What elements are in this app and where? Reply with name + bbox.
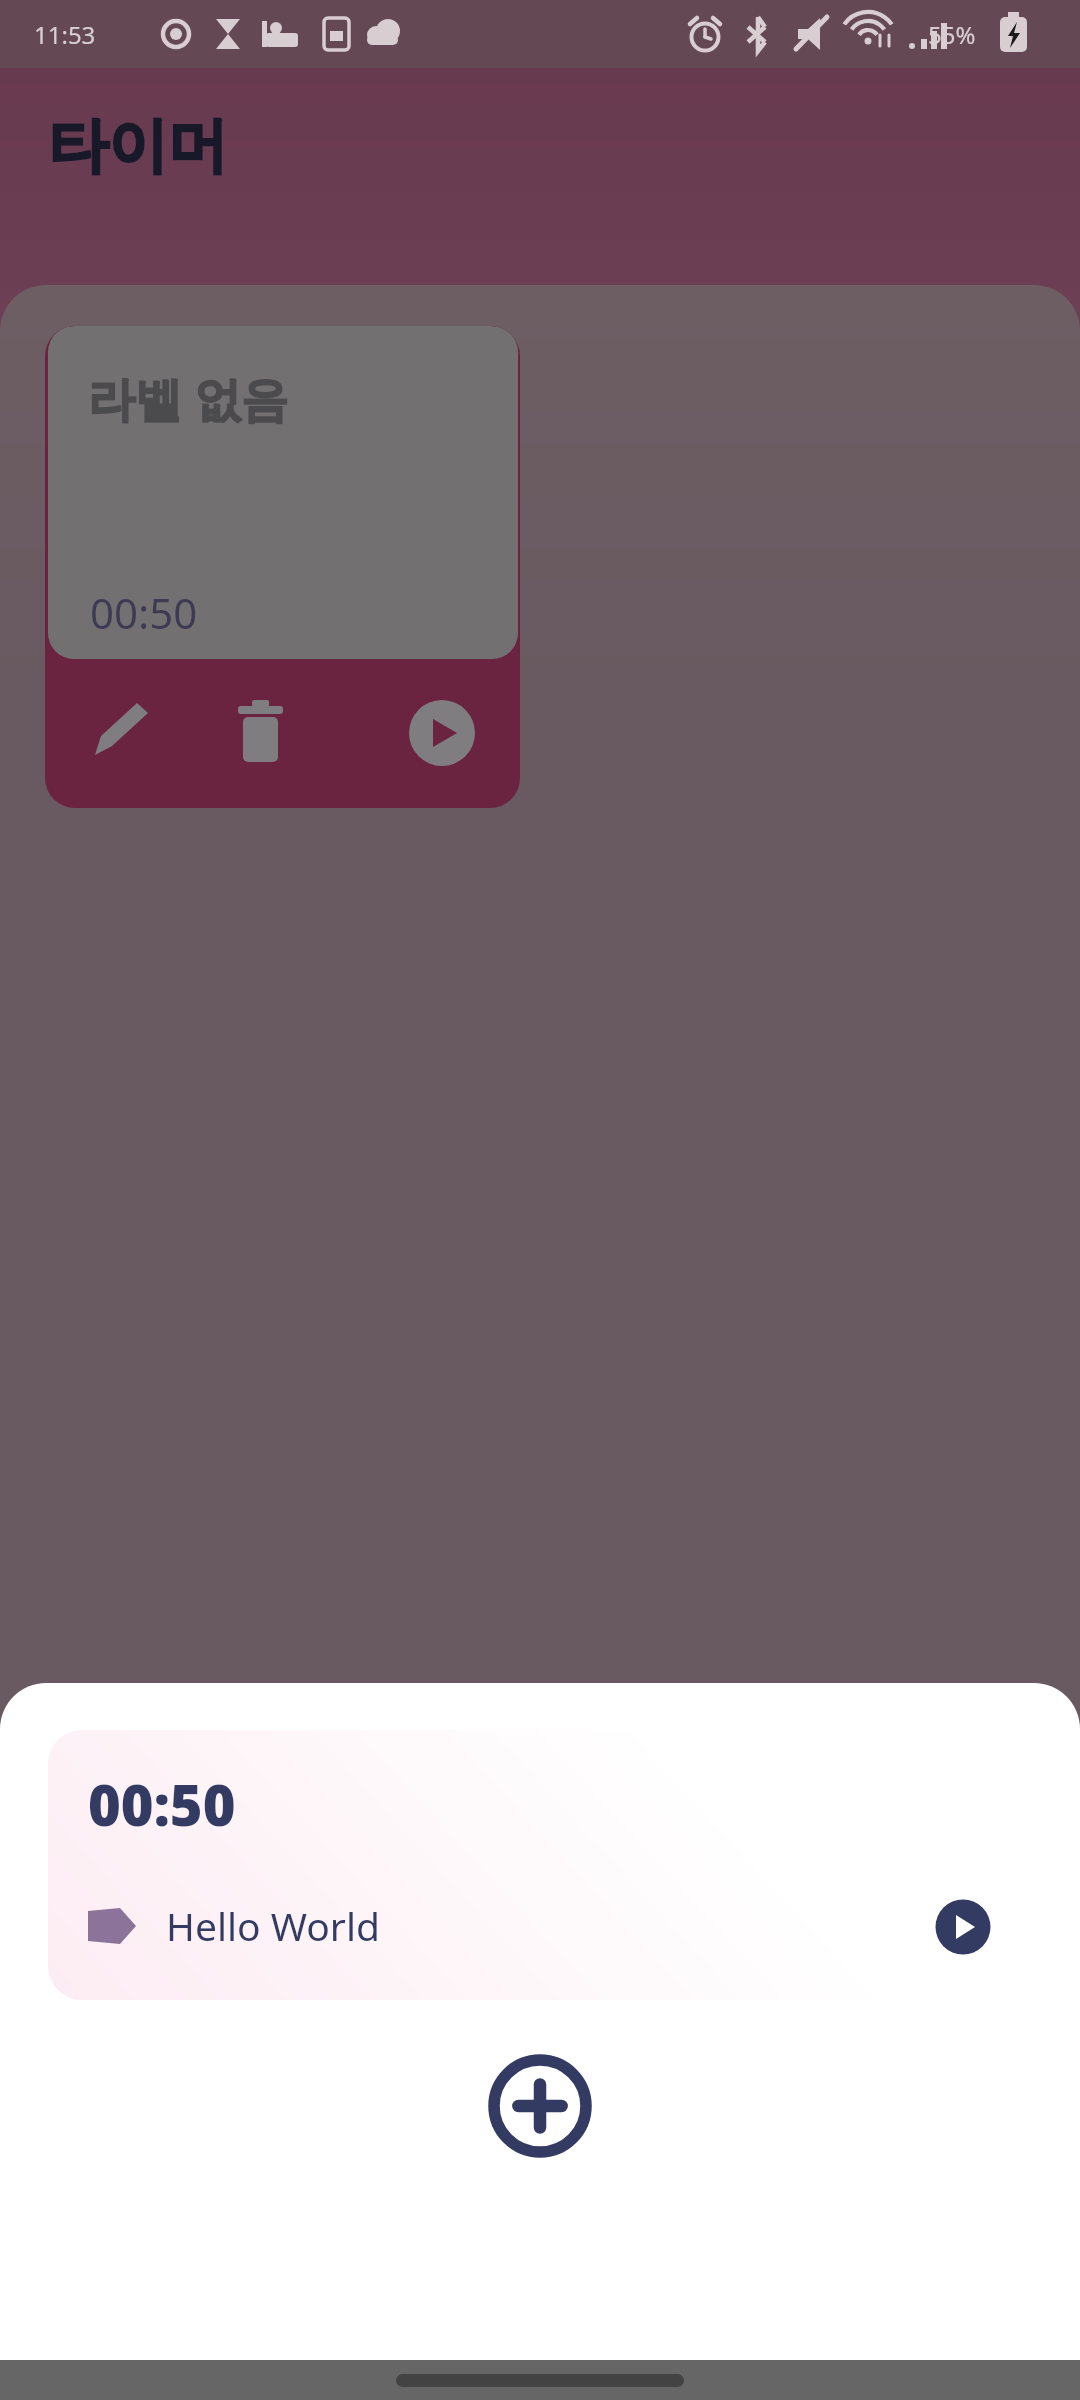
staticText: 라벨 없음: [88, 366, 289, 430]
staticText: 타이머: [48, 108, 228, 184]
button[interactable]: Add timer: [486, 2052, 594, 2160]
staticText: 00:50: [90, 584, 198, 641]
staticText: 55%: [928, 18, 976, 51]
staticText: 00:50: [88, 1766, 236, 1842]
staticText: Hello World: [166, 1899, 380, 1952]
button[interactable]: 00:50: [48, 1730, 1032, 2000]
button[interactable]: 라벨 없음: [45, 326, 520, 808]
staticText: 11:53: [34, 18, 96, 51]
button[interactable]: Start timer: [930, 1894, 996, 1960]
